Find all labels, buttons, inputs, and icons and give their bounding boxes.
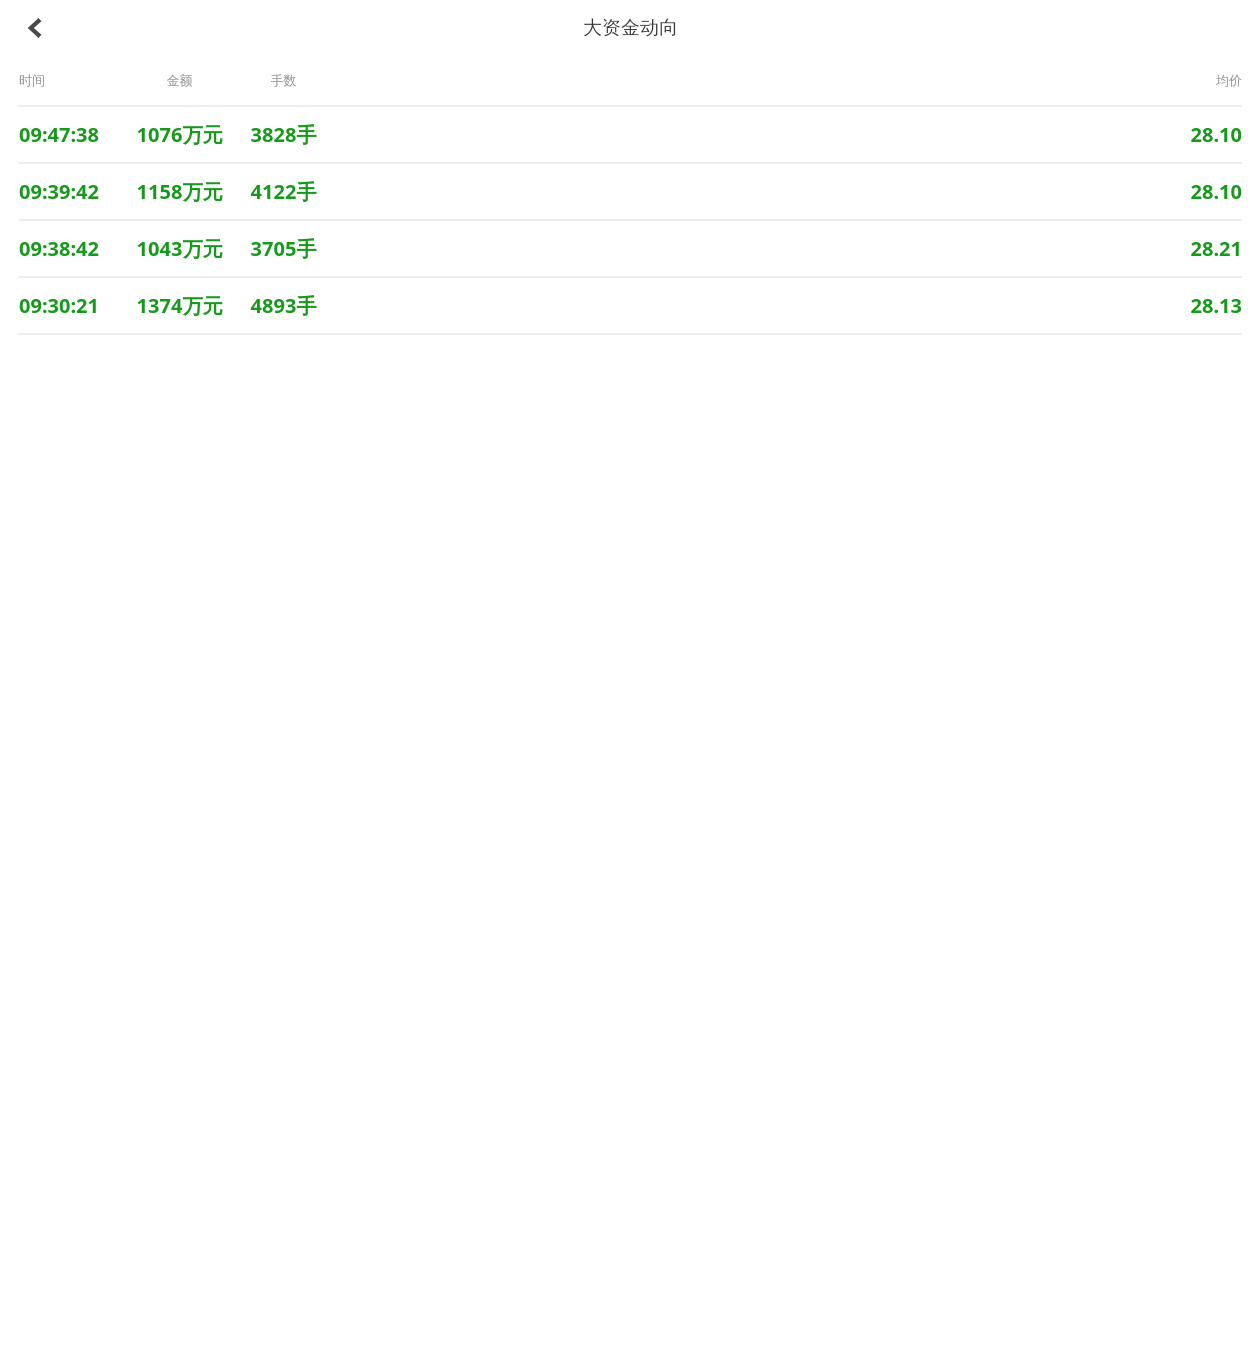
staticText: 1158万元	[122, 178, 237, 205]
staticText: 1374万元	[122, 292, 237, 319]
staticText: 4893手	[237, 292, 330, 319]
staticText: 1076万元	[122, 121, 237, 148]
staticText: 4122手	[237, 178, 330, 205]
button[interactable]: 09:38:42	[0, 221, 1260, 276]
staticText: 28.10	[330, 121, 1242, 148]
staticText: 09:38:42	[19, 235, 122, 262]
staticText: 09:39:42	[19, 178, 122, 205]
staticText: 均价	[330, 72, 1242, 88]
button[interactable]: Back	[14, 6, 58, 50]
button[interactable]: 09:47:38	[0, 107, 1260, 162]
staticText: 金额	[122, 72, 237, 88]
staticText: 09:30:21	[19, 292, 122, 319]
staticText: 3705手	[237, 235, 330, 262]
staticText: 时间	[19, 72, 122, 88]
staticText: 09:47:38	[19, 121, 122, 148]
staticText: 28.10	[330, 178, 1242, 205]
staticText: 1043万元	[122, 235, 237, 262]
button[interactable]: 09:39:42	[0, 164, 1260, 219]
staticText: 手数	[237, 72, 330, 88]
staticText: 大资金动向	[583, 16, 678, 40]
staticText: 3828手	[237, 121, 330, 148]
staticText: 28.13	[330, 292, 1242, 319]
button[interactable]: 09:30:21	[0, 278, 1260, 333]
staticText: 28.21	[330, 235, 1242, 262]
